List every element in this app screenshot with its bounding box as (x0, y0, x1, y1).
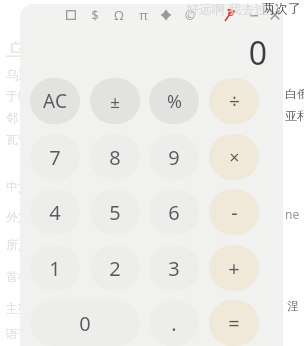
button[interactable]: 0 (30, 300, 140, 346)
button[interactable]: + (209, 245, 259, 291)
staticText: 0 (40, 31, 267, 75)
staticText: 主要城市： 哈尔科夫，文尼察，敖德萨，顿涅 (6, 300, 250, 316)
button[interactable]: Minimize (245, 6, 263, 24)
staticText: 所属洲： 欧洲 (6, 236, 85, 252)
staticText: 两次了 (262, 0, 301, 16)
staticText: 瓦诸国相连。乌克兰地理位 (6, 132, 150, 147)
staticText: $ (91, 6, 99, 24)
button[interactable]: Close (266, 6, 284, 24)
staticText: 乌克兰 (6, 38, 72, 66)
button[interactable]: Constants (134, 6, 152, 24)
staticText: © (185, 7, 195, 23)
button[interactable]: 8 (90, 134, 140, 180)
button[interactable]: 2 (90, 245, 140, 291)
staticText: AC (43, 88, 67, 114)
staticText: Ω (114, 6, 124, 24)
staticText: 2 (109, 255, 121, 282)
staticText: 3 (168, 255, 180, 282)
button[interactable]: ± (90, 78, 140, 124)
button[interactable]: Currency (86, 6, 104, 24)
staticText: π (139, 6, 148, 24)
staticText: 7 (49, 144, 61, 171)
staticText: 外文名： 乌克兰语：УКРАЇНА,英语：Ukraine (6, 208, 253, 224)
button[interactable]: Units (110, 6, 128, 24)
staticText: × (229, 145, 240, 170)
staticText: . (171, 310, 177, 337)
button[interactable]: = (209, 300, 259, 346)
staticText: + (228, 255, 240, 282)
button[interactable]: Square mode (62, 6, 80, 24)
button[interactable]: 5 (90, 189, 140, 235)
staticText: 邻、西与波兰、斯洛伐克、匈牙利、罗马尼亚和摩 (6, 110, 270, 125)
staticText: 8 (109, 144, 121, 171)
staticText: 4 (49, 199, 61, 226)
staticText: ne (285, 206, 300, 222)
staticText: - (231, 199, 238, 226)
button[interactable]: Move (157, 6, 175, 24)
button[interactable]: ÷ (209, 78, 259, 124)
staticText: = (228, 310, 240, 337)
staticText: 0 (79, 310, 91, 337)
staticText: 白俄 (285, 86, 304, 101)
staticText: 6 (168, 199, 180, 226)
staticText: 1 (49, 255, 61, 282)
button[interactable]: . (149, 300, 199, 346)
staticText: 中文名： 乌克兰 (6, 178, 97, 194)
staticText: ± (110, 90, 120, 113)
staticText: 9 (168, 144, 180, 171)
button[interactable]: 4 (30, 189, 80, 235)
button[interactable]: 7 (30, 134, 80, 180)
staticText: 涅 (287, 298, 299, 313)
button[interactable]: 3 (149, 245, 199, 291)
button[interactable]: - (209, 189, 259, 235)
staticText: 好远啊 我去过 (186, 0, 268, 18)
button[interactable]: × (209, 134, 259, 180)
button[interactable]: 9 (149, 134, 199, 180)
staticText: 于欧洲东部，东接俄罗斯，南濒黑海，北与白俄 (6, 88, 258, 103)
staticText: 首都： 基辅 (6, 268, 76, 284)
button[interactable]: 6 (149, 189, 199, 235)
button[interactable]: AC (30, 78, 80, 124)
staticText: 亚和 (285, 108, 304, 123)
staticText: 5 (109, 199, 121, 226)
staticText: ÷ (229, 88, 240, 114)
button[interactable]: Pin window (221, 6, 239, 24)
staticText: % (167, 89, 182, 114)
button[interactable]: 1 (30, 245, 80, 291)
staticText: 乌克兰（乌克兰语：Україна；英语：Ukraine） (6, 66, 263, 82)
button[interactable]: Copyright (181, 6, 199, 24)
staticText: 语言等 (6, 326, 42, 341)
button[interactable]: % (149, 78, 199, 124)
